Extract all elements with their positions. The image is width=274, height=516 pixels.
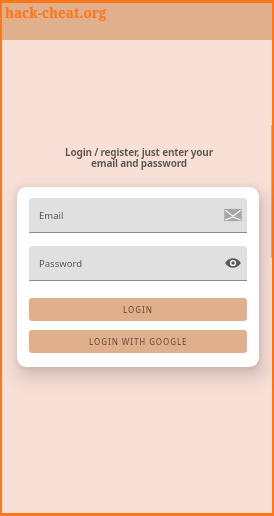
other: Show password [224, 254, 242, 272]
staticText: Email [39, 209, 64, 222]
staticText: Password [39, 257, 82, 270]
staticText: Login / register, just enter your email … [4, 145, 274, 170]
button[interactable]: Password [29, 246, 247, 280]
staticText: LOGIN WITH GOOGLE [89, 336, 188, 347]
button[interactable]: LOGIN WITH GOOGLE [29, 330, 247, 353]
button[interactable]: LOGIN [29, 298, 247, 321]
other: Email [224, 206, 242, 224]
button[interactable]: Email [29, 198, 247, 232]
staticText: hack-cheat.org [5, 4, 107, 22]
staticText: LOGIN [123, 304, 153, 315]
